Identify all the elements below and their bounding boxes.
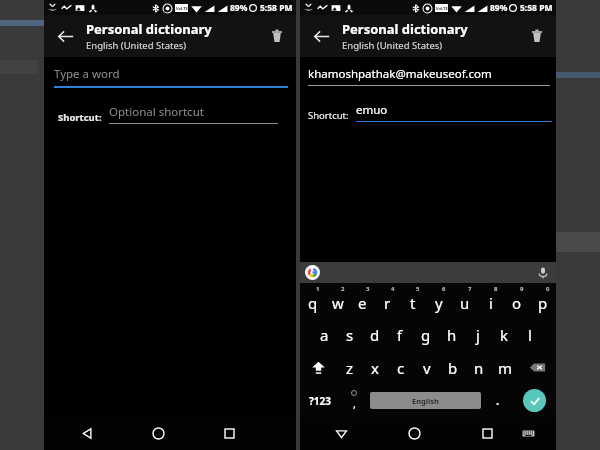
staticText: khamoshpathak@makeuseof.com bbox=[308, 66, 492, 82]
staticText: 7 bbox=[468, 285, 472, 293]
staticText: g bbox=[421, 325, 431, 345]
button[interactable]: z bbox=[337, 351, 362, 384]
button[interactable]: c bbox=[388, 351, 414, 384]
staticText: 1 bbox=[316, 285, 320, 293]
staticText: emuo bbox=[356, 102, 388, 118]
button[interactable]: , bbox=[340, 384, 368, 417]
button[interactable]: Done bbox=[513, 384, 556, 417]
button[interactable]: 6 bbox=[426, 283, 452, 318]
button[interactable]: Home bbox=[393, 417, 436, 450]
staticText: English (United States) bbox=[86, 39, 187, 52]
staticText: u bbox=[460, 293, 470, 313]
button[interactable]: x bbox=[362, 351, 388, 384]
button[interactable]: 0 bbox=[530, 283, 556, 318]
staticText: j bbox=[476, 325, 480, 345]
button[interactable]: Delete bbox=[258, 15, 296, 57]
button[interactable]: . bbox=[483, 384, 513, 417]
button[interactable]: Google search bbox=[305, 265, 320, 280]
button[interactable]: Home bbox=[137, 417, 179, 450]
staticText: c bbox=[397, 358, 405, 378]
button[interactable]: Delete bbox=[518, 15, 556, 57]
staticText: l bbox=[528, 325, 532, 345]
button[interactable]: l bbox=[517, 318, 543, 351]
staticText: English bbox=[412, 396, 439, 406]
staticText: 89% bbox=[490, 2, 508, 14]
staticText: 5 bbox=[416, 285, 420, 293]
button[interactable]: khamoshpathak@makeuseof.com bbox=[308, 66, 550, 86]
staticText: 89% bbox=[230, 2, 248, 14]
button[interactable]: s bbox=[337, 318, 362, 351]
staticText: 4 bbox=[391, 285, 395, 293]
staticText: 0 bbox=[546, 285, 550, 293]
staticText: , bbox=[353, 396, 356, 411]
staticText: i bbox=[489, 293, 493, 313]
button[interactable]: Back bbox=[300, 15, 342, 57]
staticText: s bbox=[346, 325, 354, 345]
button[interactable]: a bbox=[312, 318, 337, 351]
staticText: m bbox=[498, 358, 513, 378]
staticText: 5:58 PM bbox=[260, 2, 293, 14]
staticText: d bbox=[370, 325, 380, 345]
staticText: k bbox=[500, 325, 509, 345]
staticText: t bbox=[410, 293, 416, 313]
button[interactable]: Backspace bbox=[518, 351, 556, 384]
staticText: o bbox=[512, 293, 522, 313]
staticText: h bbox=[447, 325, 457, 345]
staticText: f bbox=[397, 325, 403, 345]
button[interactable]: 7 bbox=[452, 283, 478, 318]
button[interactable]: 2 bbox=[325, 283, 350, 318]
button[interactable]: b bbox=[440, 351, 466, 384]
button[interactable]: 9 bbox=[504, 283, 530, 318]
button[interactable]: Type a word bbox=[54, 66, 288, 88]
button[interactable]: Recents bbox=[208, 417, 250, 450]
button[interactable]: h bbox=[439, 318, 465, 351]
staticText: VoLTE bbox=[436, 6, 448, 11]
button[interactable]: Switch keyboard bbox=[509, 417, 547, 450]
staticText: ?123 bbox=[309, 394, 331, 408]
staticText: a bbox=[320, 325, 329, 345]
staticText: v bbox=[423, 358, 431, 378]
staticText: p bbox=[538, 293, 548, 313]
button[interactable]: g bbox=[413, 318, 439, 351]
button[interactable]: m bbox=[492, 351, 518, 384]
button[interactable]: Back bbox=[44, 15, 86, 57]
staticText: z bbox=[346, 358, 354, 378]
staticText: Personal dictionary bbox=[342, 20, 468, 38]
button[interactable]: Back bbox=[66, 417, 108, 450]
staticText: q bbox=[308, 293, 318, 313]
staticText: x bbox=[371, 358, 379, 378]
staticText: b bbox=[448, 358, 458, 378]
button[interactable]: v bbox=[414, 351, 440, 384]
button[interactable]: Shortcut: bbox=[308, 102, 552, 122]
staticText: 6 bbox=[442, 285, 446, 293]
staticText: 8 bbox=[494, 285, 498, 293]
button[interactable]: j bbox=[465, 318, 491, 351]
button[interactable]: Shift bbox=[300, 351, 337, 384]
staticText: y bbox=[435, 293, 443, 313]
button[interactable]: 8 bbox=[478, 283, 504, 318]
button[interactable]: 3 bbox=[350, 283, 375, 318]
button[interactable]: f bbox=[387, 318, 413, 351]
staticText: n bbox=[474, 358, 484, 378]
button[interactable]: Shortcut: bbox=[58, 104, 278, 124]
staticText: . bbox=[496, 393, 500, 408]
staticText: 9 bbox=[520, 285, 524, 293]
staticText: 5:58 PM bbox=[520, 2, 553, 14]
button[interactable]: n bbox=[466, 351, 492, 384]
button[interactable]: Recents bbox=[466, 417, 509, 450]
button[interactable]: Voice input bbox=[536, 266, 550, 280]
staticText: Shortcut: bbox=[308, 109, 349, 122]
button[interactable]: 1 bbox=[300, 283, 325, 318]
button[interactable]: k bbox=[491, 318, 517, 351]
staticText: VoLTE bbox=[176, 6, 188, 11]
staticText: 3 bbox=[366, 285, 370, 293]
staticText: Optional shortcut bbox=[109, 104, 204, 120]
staticText: w bbox=[332, 293, 344, 313]
button[interactable]: 4 bbox=[375, 283, 400, 318]
button[interactable]: d bbox=[362, 318, 387, 351]
button[interactable]: English bbox=[370, 392, 481, 409]
button[interactable]: 5 bbox=[400, 283, 426, 318]
button[interactable]: ?123 bbox=[300, 384, 340, 417]
button[interactable]: Back bbox=[320, 417, 363, 450]
staticText: e bbox=[358, 293, 367, 313]
